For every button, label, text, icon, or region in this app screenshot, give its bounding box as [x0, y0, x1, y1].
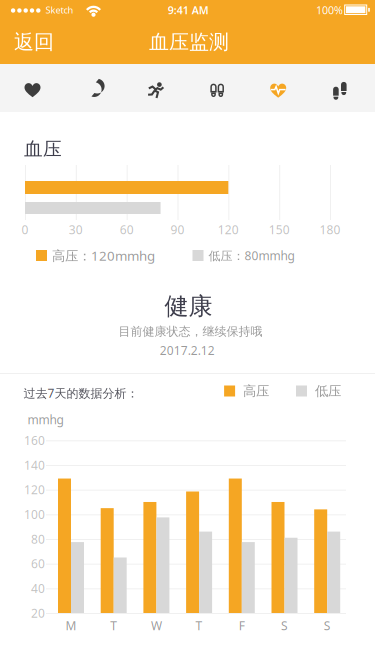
button[interactable]: 返回: [6, 20, 62, 64]
staticText: 80: [31, 531, 45, 547]
staticText: 血压: [24, 137, 62, 160]
staticText: 9:41 AM: [168, 3, 209, 17]
staticText: S: [324, 618, 331, 633]
staticText: 100%: [316, 3, 343, 17]
staticText: 90: [170, 221, 184, 237]
staticText: Sketch: [45, 4, 73, 16]
staticText: 目前健康状态，继续保持哦: [118, 324, 262, 339]
staticText: S: [281, 618, 288, 633]
staticText: 高压：120mmhg: [52, 247, 155, 264]
staticText: 0: [21, 221, 28, 237]
button[interactable]: Walking: [309, 66, 371, 114]
button[interactable]: Exercise: [125, 66, 187, 114]
staticText: 高压: [243, 383, 269, 399]
staticText: 30: [69, 221, 83, 237]
staticText: 180: [319, 221, 340, 237]
staticText: 160: [24, 432, 45, 448]
staticText: 40: [31, 580, 45, 596]
staticText: 2017.2.12: [160, 342, 215, 358]
staticText: 100: [24, 506, 45, 522]
staticText: 血压监测: [149, 30, 229, 54]
staticText: 60: [120, 221, 134, 237]
staticText: 120: [218, 221, 239, 237]
button[interactable]: Steps: [186, 66, 248, 114]
staticText: M: [65, 618, 76, 633]
staticText: T: [196, 618, 203, 633]
staticText: 过去7天的数据分析：: [23, 385, 138, 401]
staticText: 低压：80mmhg: [208, 247, 294, 263]
staticText: W: [151, 618, 162, 633]
button[interactable]: Sleep: [64, 66, 126, 114]
staticText: mmhg: [27, 411, 63, 427]
staticText: 120: [24, 482, 45, 498]
button[interactable]: Blood pressure: [247, 66, 309, 114]
staticText: 60: [31, 556, 45, 572]
staticText: 150: [269, 221, 290, 237]
button[interactable]: Heart rate: [1, 66, 63, 114]
staticText: 健康: [165, 292, 213, 321]
staticText: 返回: [14, 30, 54, 54]
staticText: T: [110, 618, 117, 633]
staticText: 140: [24, 457, 45, 473]
staticText: 低压: [315, 383, 341, 399]
staticText: F: [239, 618, 245, 633]
staticText: 20: [31, 605, 45, 621]
